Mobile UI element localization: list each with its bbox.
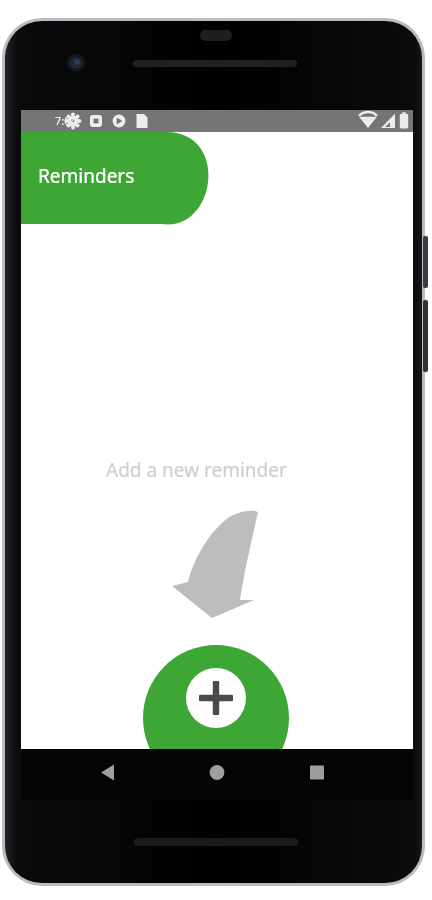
button[interactable]: Reminders — [38, 163, 135, 189]
button[interactable]: Home — [187, 749, 247, 800]
staticText: 7:04 — [55, 113, 77, 128]
staticText: Reminders — [38, 163, 135, 189]
staticText: Add a new reminder — [106, 457, 287, 483]
button[interactable]: Add a new reminder — [143, 645, 289, 748]
button[interactable]: Recent apps — [295, 749, 355, 800]
button[interactable]: Back — [78, 749, 138, 800]
